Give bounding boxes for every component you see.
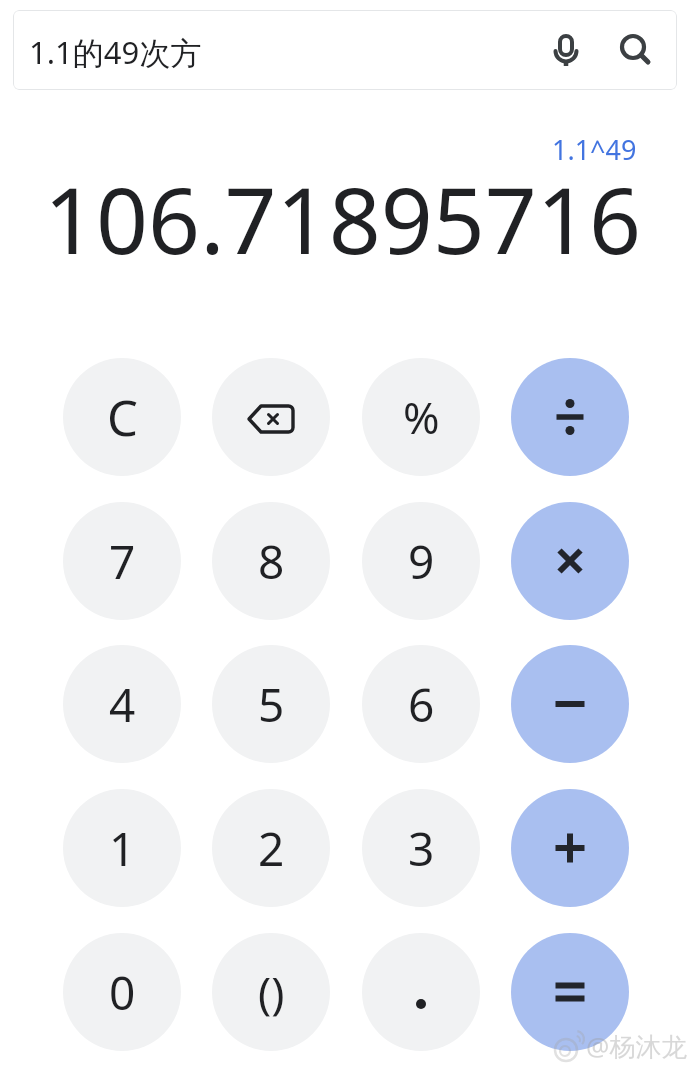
button[interactable]: 6 — [362, 645, 480, 763]
staticText: 0 — [109, 961, 136, 1024]
staticText: 106.71895716 — [44, 157, 641, 281]
button[interactable]: 5 — [212, 645, 330, 763]
staticText: 2 — [258, 817, 285, 880]
button[interactable]: % — [362, 358, 480, 476]
button[interactable]: 4 — [63, 645, 181, 763]
staticText: 9 — [408, 530, 435, 593]
button[interactable]: 0 — [63, 933, 181, 1051]
button[interactable] — [511, 502, 629, 620]
staticText: 8 — [258, 530, 285, 593]
staticText: % — [403, 387, 440, 447]
button[interactable]: 2 — [212, 789, 330, 907]
button[interactable] — [511, 358, 629, 476]
button[interactable]: 3 — [362, 789, 480, 907]
button[interactable] — [511, 645, 629, 763]
staticText: C — [107, 384, 138, 451]
button[interactable]: C — [63, 358, 181, 476]
button[interactable] — [615, 30, 655, 70]
staticText: 3 — [408, 817, 435, 880]
button[interactable] — [511, 933, 629, 1051]
staticText: 5 — [258, 673, 285, 736]
staticText: 1 — [109, 817, 136, 880]
button[interactable] — [546, 30, 586, 70]
button[interactable] — [212, 358, 330, 476]
button[interactable]: 8 — [212, 502, 330, 620]
button[interactable]: 9 — [362, 502, 480, 620]
button[interactable]: 1.1的49次方 — [13, 10, 677, 90]
button[interactable]: () — [212, 933, 330, 1051]
staticText: 1.1的49次方 — [29, 31, 202, 73]
staticText: 4 — [109, 673, 136, 736]
staticText: () — [258, 962, 285, 1022]
staticText: @杨沐龙 — [586, 1028, 688, 1064]
button[interactable]: 1 — [63, 789, 181, 907]
button[interactable] — [362, 933, 480, 1051]
button[interactable]: 7 — [63, 502, 181, 620]
staticText: 6 — [408, 673, 435, 736]
staticText: 1.1^49 — [552, 131, 637, 168]
staticText: 7 — [109, 530, 136, 593]
button[interactable] — [511, 789, 629, 907]
